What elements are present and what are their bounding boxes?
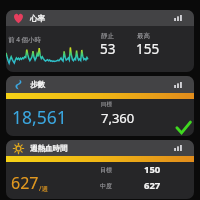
- button[interactable]: 週熱血時間: [6, 140, 194, 199]
- staticText: 627: [11, 172, 39, 194]
- staticText: 最高: [137, 32, 150, 40]
- staticText: 步數: [30, 80, 45, 89]
- staticText: /週: [39, 184, 48, 193]
- staticText: 中度: [100, 182, 112, 190]
- staticText: 53: [100, 40, 116, 58]
- staticText: 目標: [101, 101, 112, 108]
- staticText: 627: [144, 179, 161, 192]
- staticText: 前 4 個小時: [8, 35, 42, 44]
- staticText: 155: [136, 40, 160, 58]
- staticText: 7,360: [101, 109, 135, 127]
- staticText: 心率: [30, 14, 45, 23]
- staticText: 靜止: [101, 32, 114, 40]
- staticText: 週熱血時間: [30, 144, 68, 153]
- staticText: 18,561: [12, 105, 67, 129]
- button[interactable]: 心率: [6, 10, 194, 72]
- staticText: 目標: [100, 166, 112, 174]
- staticText: 150: [144, 163, 161, 176]
- button[interactable]: 步數: [6, 76, 194, 136]
